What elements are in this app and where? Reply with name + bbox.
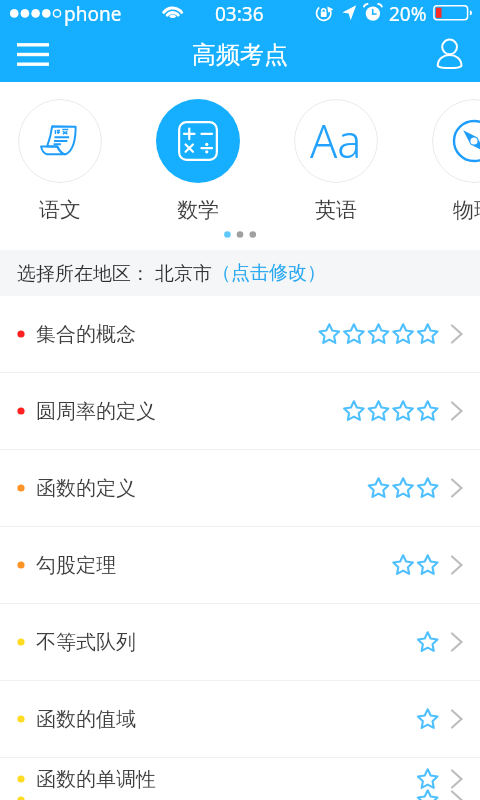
staticText: Aa: [310, 110, 362, 171]
staticText: 20%: [389, 1, 427, 27]
staticText: 03:36: [215, 1, 264, 27]
staticText: 语文: [39, 197, 81, 223]
button[interactable]: 集合的概念: [0, 296, 480, 372]
button[interactable]: 圆周率的定义: [0, 373, 480, 449]
button[interactable]: 选择所在地区： 北京市: [0, 250, 480, 296]
staticText: 函数的值域: [36, 707, 136, 732]
staticText: 不等式队列: [36, 630, 136, 655]
staticText: 高频考点: [192, 40, 288, 70]
staticText: phone: [64, 1, 122, 27]
button[interactable]: 勾股定理: [0, 527, 480, 603]
staticText: 函数的单调性: [36, 767, 156, 792]
button[interactable]: Aa: [294, 99, 378, 223]
staticText: 圆周率的定义: [36, 399, 156, 424]
button[interactable]: 函数的单调性: [0, 758, 480, 800]
button[interactable]: 函数的值域: [0, 681, 480, 757]
staticText: （点击修改）: [212, 261, 326, 285]
button[interactable]: 语文: [18, 99, 102, 223]
button[interactable]: 物理: [432, 99, 480, 223]
button[interactable]: 数学: [156, 99, 240, 223]
button[interactable]: 函数的定义: [0, 450, 480, 526]
button[interactable]: Profile: [418, 28, 480, 82]
staticText: 勾股定理: [36, 553, 116, 578]
button[interactable]: 不等式队列: [0, 604, 480, 680]
staticText: 集合的概念: [36, 322, 136, 347]
staticText: 数学: [177, 197, 219, 223]
staticText: 函数的定义: [36, 476, 136, 501]
staticText: 选择所在地区： 北京市: [17, 260, 212, 286]
button[interactable]: Menu: [0, 28, 66, 82]
staticText: 英语: [315, 197, 357, 223]
staticText: 物理: [453, 197, 480, 223]
